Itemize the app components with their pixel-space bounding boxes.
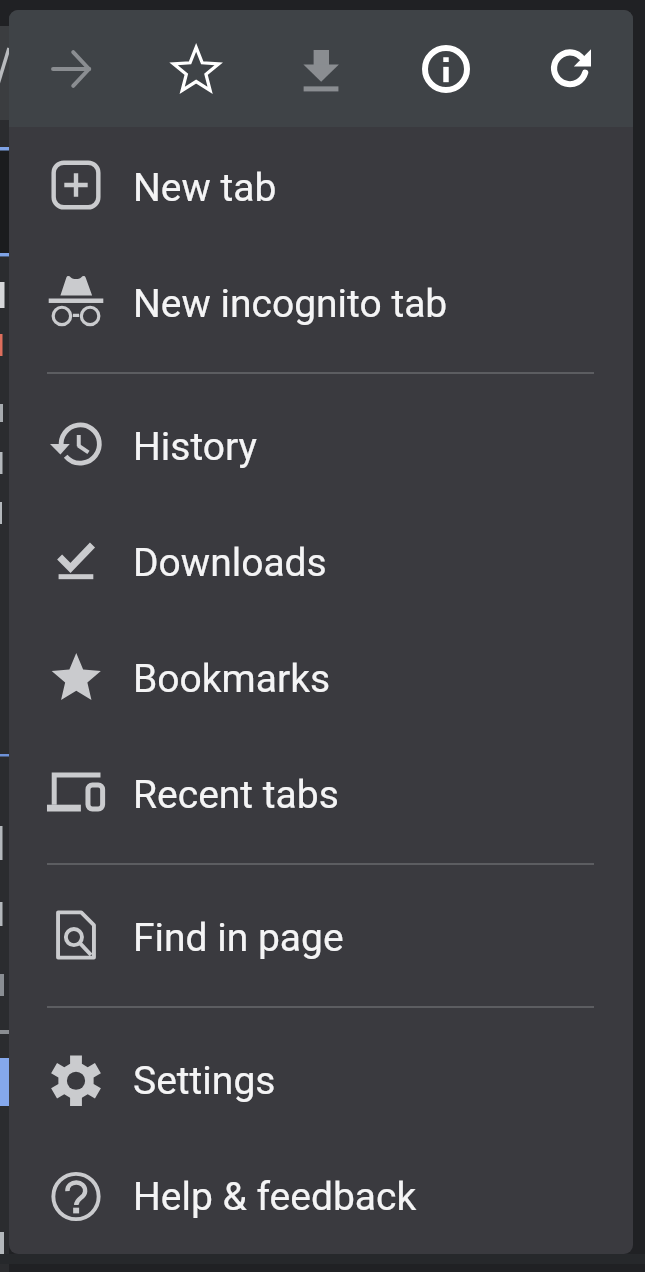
button[interactable]: History xyxy=(9,386,633,502)
button[interactable]: New tab xyxy=(9,127,633,243)
staticText: Find in page xyxy=(133,915,344,961)
staticText: Downloads xyxy=(133,540,327,586)
button[interactable]: Download page xyxy=(262,10,379,127)
button[interactable]: Downloads xyxy=(9,502,633,618)
staticText: Bookmarks xyxy=(133,656,331,702)
button[interactable]: Bookmark this page xyxy=(137,10,254,127)
button[interactable]: Page info xyxy=(387,10,504,127)
staticText: New incognito tab xyxy=(133,281,448,327)
staticText: History xyxy=(133,424,258,470)
button[interactable]: New incognito tab xyxy=(9,243,633,359)
button[interactable]: Forward xyxy=(13,10,130,127)
staticText: New tab xyxy=(133,165,277,211)
button[interactable]: Bookmarks xyxy=(9,618,633,734)
button[interactable]: Settings xyxy=(9,1020,633,1136)
staticText: Settings xyxy=(133,1058,276,1104)
staticText: Help & feedback xyxy=(133,1174,417,1220)
button[interactable]: Reload xyxy=(512,10,629,127)
button[interactable]: Help & feedback xyxy=(9,1136,633,1252)
button[interactable]: Find in page xyxy=(9,877,633,993)
staticText: Recent tabs xyxy=(133,772,339,818)
button[interactable]: Recent tabs xyxy=(9,734,633,850)
